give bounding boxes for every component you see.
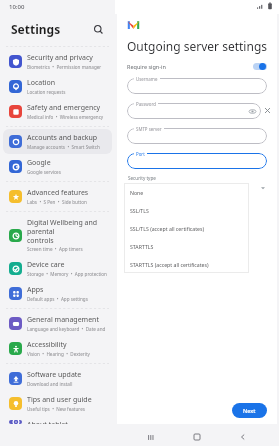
button[interactable]: General management	[3, 311, 112, 336]
staticText: Security and privacy	[27, 53, 93, 63]
staticText: SSL/TLS (accept all certificates)	[130, 225, 204, 232]
staticText: Google services	[27, 169, 61, 175]
staticText: Apps	[27, 285, 44, 295]
staticText: Require sign-in	[127, 63, 166, 70]
staticText: Safety and emergency	[27, 103, 101, 113]
staticText: Labs • S Pen • Side button	[27, 199, 87, 205]
button[interactable]: Safety and emergency	[3, 99, 112, 124]
button[interactable]: Show password	[248, 107, 256, 115]
staticText: Accounts and backup	[27, 133, 98, 143]
button[interactable]: Recent apps	[141, 428, 161, 446]
staticText: Security type	[128, 175, 156, 181]
staticText: None	[130, 189, 144, 196]
button[interactable]	[127, 78, 267, 94]
staticText: Location requests	[27, 89, 66, 95]
button[interactable]: Apps	[3, 281, 112, 306]
button[interactable]: Location	[3, 74, 112, 99]
staticText: Biometrics • Permission manager	[27, 64, 102, 70]
staticText: Port	[136, 151, 145, 157]
staticText: Storage • Memory • App protection	[27, 271, 107, 277]
button[interactable]: Search	[89, 20, 107, 38]
staticText: Password	[136, 101, 156, 107]
button[interactable]: STARTTLS	[124, 237, 249, 255]
staticText: Medical info • Wireless emergency alerts	[27, 114, 108, 120]
button[interactable]: SSL/TLS	[124, 201, 249, 219]
button[interactable]	[127, 153, 267, 169]
button[interactable]: SSL/TLS (accept all certificates)	[124, 219, 249, 237]
button[interactable]: Google	[3, 154, 112, 179]
staticText: Outgoing server settings	[127, 38, 268, 54]
button[interactable]: Back	[233, 428, 253, 446]
staticText: Settings	[11, 21, 61, 37]
staticText: Advanced features	[27, 188, 89, 198]
button[interactable]: Software update	[3, 366, 112, 391]
button[interactable]: About tablet	[3, 416, 112, 428]
staticText: General management	[27, 315, 99, 325]
button[interactable]: Clear	[261, 104, 273, 116]
staticText: Download and install	[27, 381, 73, 387]
button[interactable]: STARTTLS (accept all certificates)	[124, 255, 249, 273]
button[interactable]: Advanced features	[3, 184, 112, 209]
button[interactable]: Security and privacy	[3, 49, 112, 74]
staticText: Username	[136, 76, 158, 82]
staticText: Device care	[27, 260, 65, 270]
staticText: Useful tips • New features	[27, 406, 85, 412]
button[interactable]: None	[124, 183, 249, 201]
staticText: About tablet	[27, 420, 68, 424]
button[interactable]: Home	[187, 428, 207, 446]
button[interactable]: Device care	[3, 256, 112, 281]
button[interactable]	[127, 103, 261, 119]
staticText: 10:00	[9, 3, 25, 11]
staticText: SMTP server	[136, 126, 162, 132]
button[interactable]	[127, 128, 267, 144]
button[interactable]: Digital Wellbeing and parental controls	[3, 214, 112, 256]
staticText: Manage accounts • Smart Switch	[27, 144, 100, 150]
staticText: STARTTLS	[130, 243, 154, 250]
staticText: STARTTLS (accept all certificates)	[130, 261, 209, 268]
button[interactable]: Accessibility	[3, 336, 112, 361]
button[interactable]: Tips and user guide	[3, 391, 112, 416]
staticText: Tips and user guide	[27, 395, 92, 405]
staticText: Vision • Hearing • Dexterity	[27, 351, 90, 357]
staticText: SSL/TLS	[130, 207, 149, 214]
button[interactable]: Require sign-in	[117, 63, 277, 70]
staticText: Software update	[27, 370, 82, 380]
button[interactable]: Require sign-in toggle	[253, 63, 267, 70]
button[interactable]: Next	[232, 403, 267, 418]
staticText: Default apps • App settings	[27, 296, 88, 302]
button[interactable]: Accounts and backup	[3, 129, 112, 154]
staticText: Digital Wellbeing and parental controls	[27, 218, 108, 245]
staticText: Google	[27, 158, 51, 168]
staticText: Location	[27, 78, 56, 88]
staticText: Next	[243, 407, 256, 414]
staticText: Screen time • App timers	[27, 246, 83, 252]
staticText: Language and keyboard • Date and time	[27, 326, 108, 332]
staticText: Accessibility	[27, 340, 67, 350]
